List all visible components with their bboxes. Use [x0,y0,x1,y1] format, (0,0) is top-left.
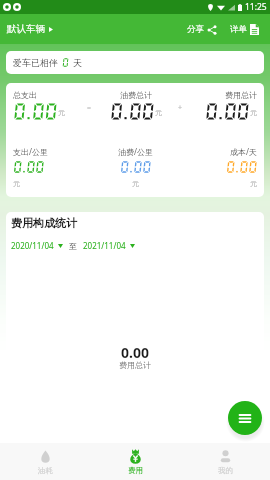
staticText: 0.00 [121,343,149,362]
button[interactable]: 默认车辆 [0,18,60,40]
staticText: 天 [73,57,82,68]
staticText: 油费总计 [120,90,152,100]
staticText: 总支出 [13,90,37,100]
staticText: 11:25 [245,1,267,13]
staticText: 2020/11/04 [11,240,54,251]
staticText: 元 [132,179,139,188]
button[interactable]: 费用 [90,443,180,480]
staticText: 2021/11/04 [83,240,126,251]
button[interactable]: 2021/11/04 [83,238,135,253]
staticText: 成本/天 [230,146,257,157]
staticText: 详单 [230,24,247,35]
staticText: 费用总计 [119,360,151,370]
staticText: 分享 [187,24,204,35]
staticText: 费用总计 [225,90,257,100]
button[interactable]: 2020/11/04 [11,238,63,253]
button[interactable]: 我的 [180,443,270,480]
staticText: = [87,103,92,113]
staticText: 元 [250,179,257,188]
staticText: 爱车已相伴 [13,57,58,68]
staticText: 费用 [128,466,143,475]
staticText: + [178,103,183,113]
staticText: 油费/公里 [118,146,153,157]
staticText: 元 [58,108,65,117]
staticText: 默认车辆 [7,23,45,35]
staticText: 元 [13,179,20,188]
staticText: 元 [250,108,257,117]
staticText: 费用构成统计 [11,216,77,230]
button[interactable]: 详单 [227,20,262,39]
staticText: 我的 [218,466,233,475]
staticText: 元 [155,108,162,117]
button[interactable]: 油耗 [0,443,90,480]
staticText: 至 [69,241,77,251]
button[interactable]: 爱车已相伴 [6,51,264,74]
button[interactable]: Menu [228,401,262,435]
staticText: 支出/公里 [13,146,48,157]
staticText: 油耗 [38,466,53,475]
button[interactable]: 分享 [184,20,220,39]
